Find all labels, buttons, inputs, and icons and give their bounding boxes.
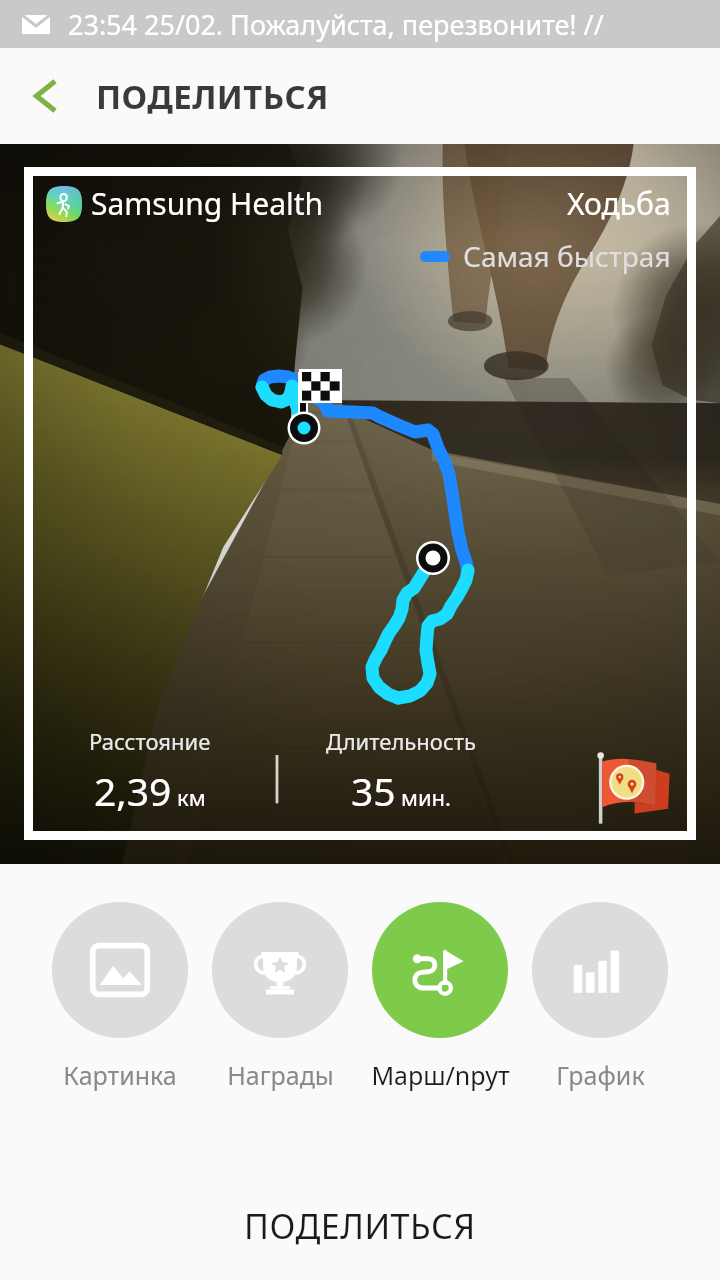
staticText: км bbox=[177, 782, 206, 812]
button[interactable]: Картинка bbox=[40, 864, 200, 1092]
staticText: 23:54 25/02. Пожалуйста, перезвоните! // bbox=[68, 6, 604, 43]
staticText: мин. bbox=[401, 782, 451, 812]
staticText: ПОДЕЛИТЬСЯ bbox=[96, 74, 329, 119]
staticText: Марш/npyт bbox=[371, 1058, 510, 1092]
button[interactable]: Награды bbox=[200, 864, 360, 1092]
button[interactable]: Марш/npyт bbox=[360, 864, 520, 1092]
staticText: ПОДЕЛИТЬСЯ bbox=[244, 1203, 476, 1249]
staticText: Самая быстрая bbox=[463, 237, 671, 275]
staticText: Ходьба bbox=[567, 183, 671, 224]
staticText: Награды bbox=[227, 1058, 334, 1092]
button[interactable]: График bbox=[520, 864, 680, 1092]
button[interactable]: ПОДЕЛИТЬСЯ bbox=[0, 1120, 720, 1280]
button[interactable]: Back bbox=[0, 48, 96, 144]
staticText: Samsung Health bbox=[91, 183, 324, 224]
staticText: Длительность bbox=[326, 726, 476, 756]
staticText: Картинка bbox=[63, 1058, 177, 1092]
staticText: 35 bbox=[351, 764, 396, 817]
staticText: 2,39 bbox=[94, 764, 172, 817]
staticText: График bbox=[556, 1058, 645, 1092]
staticText: Расстояние bbox=[89, 726, 211, 756]
